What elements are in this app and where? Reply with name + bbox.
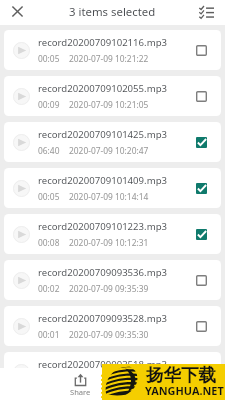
button[interactable]: record20200709101409.mp3 (4, 168, 221, 208)
button[interactable]: record20200709101223.mp3 (4, 214, 221, 254)
staticText: 2020-07-09 10:20:47 (69, 145, 149, 156)
staticText: 2020-07-09 10:12:31 (69, 237, 149, 248)
staticText: Share (70, 387, 91, 397)
button[interactable]: Select item (189, 130, 213, 154)
staticText: 00:01 (38, 329, 60, 340)
button[interactable]: record20200709093518.mp3 (4, 352, 221, 392)
button[interactable]: record20200709101425.mp3 (4, 122, 221, 162)
staticText: 扬华下载 (146, 364, 216, 386)
staticText: record20200709102055.mp3 (38, 82, 168, 95)
staticText: record20200709101425.mp3 (38, 128, 168, 141)
button[interactable]: record20200709102055.mp3 (4, 76, 221, 116)
button[interactable]: record20200709093528.mp3 (4, 306, 221, 346)
staticText: 00:05 (38, 53, 60, 64)
button[interactable]: Select item (189, 222, 213, 246)
button[interactable]: record20200709102116.mp3 (4, 30, 221, 70)
button[interactable]: Select all (195, 0, 218, 23)
staticText: record20200709101223.mp3 (38, 220, 168, 233)
button[interactable]: Select item (189, 268, 213, 292)
staticText: record20200709093528.mp3 (38, 312, 168, 325)
staticText: 00:02 (38, 283, 60, 294)
staticText: 00:08 (38, 237, 60, 248)
staticText: 3 items selected (69, 4, 156, 20)
staticText: 2020-07-09 09:35:39 (69, 283, 149, 294)
button[interactable]: Select item (189, 314, 213, 338)
button[interactable]: Select item (189, 176, 213, 200)
staticText: 06:40 (38, 145, 60, 156)
staticText: record20200709101409.mp3 (38, 174, 168, 187)
button[interactable]: record20200709093536.mp3 (4, 260, 221, 300)
button[interactable]: Select item (189, 84, 213, 108)
staticText: YANGHUA.NET (145, 383, 224, 398)
staticText: 2020-07-09 10:21:22 (69, 53, 149, 64)
button[interactable]: Close (6, 0, 29, 23)
staticText: 2020-07-09 09:35:20 (69, 375, 149, 386)
staticText: 00:05 (38, 191, 60, 202)
button[interactable]: Select item (189, 360, 213, 384)
staticText: 2020-07-09 09:35:30 (69, 329, 149, 340)
staticText: record20200709093536.mp3 (38, 266, 168, 279)
staticText: 00:09 (38, 99, 60, 110)
staticText: record20200709093518.mp3 (38, 358, 168, 371)
button[interactable]: Select item (189, 38, 213, 62)
staticText: record20200709102116.mp3 (38, 36, 168, 49)
staticText: 2020-07-09 10:14:14 (69, 191, 149, 202)
button[interactable]: Share (64, 372, 97, 398)
staticText: 2020-07-09 10:21:05 (69, 99, 149, 110)
